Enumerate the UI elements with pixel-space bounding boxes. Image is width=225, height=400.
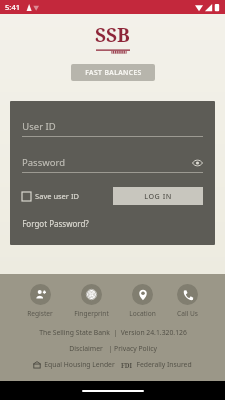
button[interactable]: Forgot Password? (22, 218, 89, 229)
staticText: Equal Housing Lender (44, 360, 115, 369)
staticText: FDIC (120, 361, 133, 369)
button[interactable]: Show password (191, 157, 203, 169)
staticText: Forgot Password? (22, 218, 89, 229)
staticText: | (103, 344, 114, 353)
button[interactable]: Call Us (175, 284, 200, 318)
button[interactable]: FAST BALANCES (71, 64, 155, 81)
staticText: Call Us (177, 309, 198, 318)
staticText: The Selling State Bank | Version 24.1.32… (39, 328, 187, 337)
staticText: Register (27, 309, 53, 318)
staticText: User ID (22, 120, 56, 133)
staticText: Password (22, 156, 65, 169)
staticText: LOG IN (144, 191, 172, 201)
button[interactable]: Disclaimer (69, 344, 103, 353)
staticText: Privacy Policy (114, 344, 157, 353)
staticText: Location (129, 309, 156, 318)
button[interactable]: Register (25, 284, 55, 318)
button[interactable]: Location (127, 284, 158, 318)
staticText: Federally Insured (136, 360, 192, 369)
staticText: SSB (95, 22, 130, 48)
staticText: Disclaimer (69, 344, 103, 353)
button[interactable]: Privacy Policy (114, 344, 157, 353)
button[interactable]: Fingerprint (72, 284, 111, 318)
staticText: Fingerprint (74, 309, 109, 318)
button[interactable]: Save user ID (22, 191, 79, 201)
staticText: FAST BALANCES (85, 68, 142, 77)
staticText: Save user ID (35, 191, 79, 201)
button[interactable]: LOG IN (113, 187, 203, 205)
staticText: 5:41 (5, 2, 20, 12)
